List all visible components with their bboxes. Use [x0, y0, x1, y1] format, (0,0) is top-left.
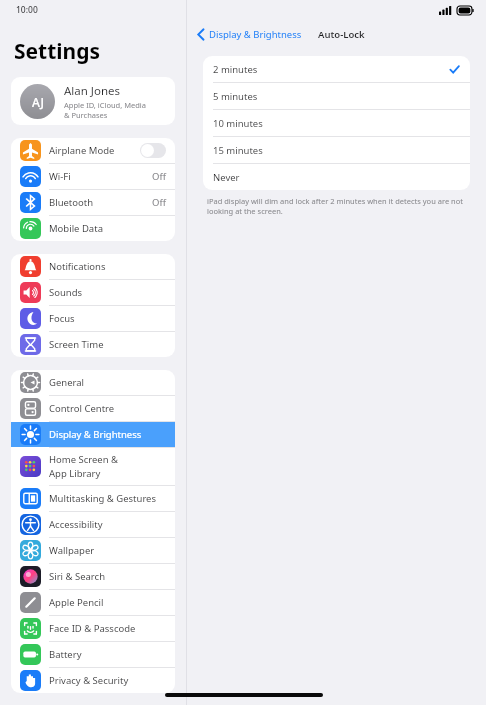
staticText: Notifications — [49, 260, 106, 273]
staticText: Never — [213, 171, 460, 184]
button[interactable]: Bluetooth — [11, 190, 175, 215]
staticText: App Library — [49, 467, 101, 480]
staticText: Accessibility — [49, 518, 103, 531]
staticText: 15 minutes — [213, 144, 460, 157]
button[interactable]: Focus — [11, 306, 175, 331]
staticText: Battery — [49, 648, 82, 661]
button[interactable]: Battery — [11, 642, 175, 667]
staticText: Sounds — [49, 286, 83, 299]
button[interactable]: Wi-Fi — [11, 164, 175, 189]
button[interactable]: Screen Time — [11, 332, 175, 357]
button[interactable]: Home Screen & — [11, 448, 175, 485]
button[interactable]: 10 minutes — [203, 110, 470, 136]
staticText: Wi-Fi — [49, 170, 71, 183]
button[interactable]: General — [11, 370, 175, 395]
staticText: & Purchases — [64, 110, 108, 120]
staticText: Apple ID, iCloud, Media — [64, 100, 146, 110]
staticText: Home Screen & — [49, 453, 119, 466]
button[interactable]: Display & Brightness — [187, 25, 306, 44]
staticText: 5 minutes — [213, 90, 460, 103]
button[interactable]: Privacy & Security — [11, 668, 175, 693]
staticText: Focus — [49, 312, 75, 325]
staticText: 10 minutes — [213, 117, 460, 130]
button[interactable]: 2 minutes — [203, 56, 470, 82]
button[interactable]: Control Centre — [11, 396, 175, 421]
button[interactable]: Notifications — [11, 254, 175, 279]
button[interactable]: Face ID & Passcode — [11, 616, 175, 641]
staticText: Siri & Search — [49, 570, 106, 583]
staticText: Mobile Data — [49, 222, 103, 235]
staticText: Off — [152, 196, 166, 209]
button[interactable]: Airplane Mode — [11, 138, 175, 163]
staticText: iPad display will dim and lock after 2 m… — [207, 196, 463, 206]
button[interactable]: Apple Pencil — [11, 590, 175, 615]
button[interactable]: 5 minutes — [203, 83, 470, 109]
button[interactable]: Display & Brightness — [11, 422, 175, 447]
button[interactable]: Siri & Search — [11, 564, 175, 589]
staticText: Settings — [14, 37, 101, 66]
staticText: Face ID & Passcode — [49, 622, 136, 635]
button[interactable]: Accessibility — [11, 512, 175, 537]
staticText: Multitasking & Gestures — [49, 492, 157, 505]
button[interactable]: Never — [203, 164, 470, 190]
button[interactable]: Mobile Data — [11, 216, 175, 241]
staticText: Display & Brightness — [209, 28, 302, 41]
button[interactable]: Multitasking & Gestures — [11, 486, 175, 511]
staticText: Control Centre — [49, 402, 115, 415]
staticText: looking at the screen. — [207, 206, 283, 216]
staticText: Apple Pencil — [49, 596, 104, 609]
staticText: Alan Jones — [64, 83, 121, 99]
button[interactable]: AJ — [11, 77, 175, 125]
button[interactable]: Wallpaper — [11, 538, 175, 563]
staticText: 2 minutes — [213, 63, 449, 76]
staticText: General — [49, 376, 85, 389]
staticText: AJ — [32, 94, 44, 110]
staticText: Privacy & Security — [49, 674, 129, 687]
staticText: Off — [152, 170, 166, 183]
button[interactable]: 15 minutes — [203, 137, 470, 163]
staticText: 10:00 — [16, 4, 38, 16]
staticText: Screen Time — [49, 338, 104, 351]
staticText: Display & Brightness — [49, 428, 142, 441]
staticText: Bluetooth — [49, 196, 94, 209]
button[interactable]: Sounds — [11, 280, 175, 305]
staticText: Wallpaper — [49, 544, 95, 557]
staticText: Auto-Lock — [318, 28, 365, 41]
staticText: Airplane Mode — [49, 144, 115, 157]
button[interactable]: Airplane Mode toggle — [140, 143, 166, 158]
